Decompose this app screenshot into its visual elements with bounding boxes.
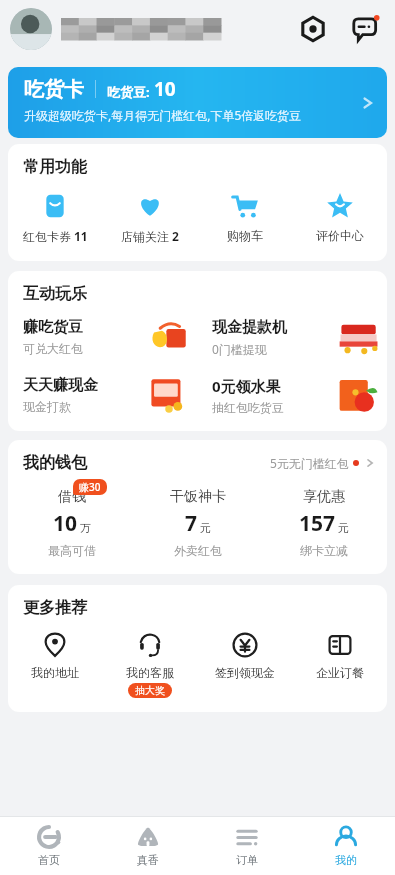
staticText: 首页 xyxy=(38,853,60,867)
staticText: 赚吃货豆 xyxy=(23,318,83,337)
button[interactable]: 订单 xyxy=(197,817,296,875)
staticText: 我的地址 xyxy=(31,665,79,680)
button[interactable]: 借钱 xyxy=(8,479,135,558)
button[interactable]: 首页 xyxy=(0,817,98,875)
button[interactable]: Profile avatar xyxy=(10,8,52,50)
staticText: 0门槛提现 xyxy=(212,341,267,357)
staticText: 可兑大红包 xyxy=(23,341,83,356)
staticText: 升级超级吃货卡,每月得无门槛红包,下单5倍返吃货豆 xyxy=(24,107,302,123)
button[interactable]: 真香 xyxy=(98,817,197,875)
button[interactable]: 店铺关注 xyxy=(102,190,197,246)
staticText: 我的钱包 xyxy=(23,453,87,473)
staticText: 抽大奖 xyxy=(135,684,165,697)
button[interactable]: 吃货卡 xyxy=(8,67,387,138)
staticText: 万 xyxy=(80,521,91,535)
staticText: 5元无门槛红包 xyxy=(270,455,349,471)
button[interactable]: 我的 xyxy=(296,817,395,875)
staticText: 真香 xyxy=(137,853,159,867)
button[interactable]: 企业订餐 xyxy=(292,632,387,680)
staticText: 外卖红包 xyxy=(174,543,222,558)
button[interactable]: 天天赚现金 xyxy=(8,373,197,417)
button[interactable]: 评价中心 xyxy=(292,190,387,245)
staticText: 元 xyxy=(200,521,211,535)
staticText: 干饭神卡 xyxy=(170,488,226,506)
staticText: 11 xyxy=(74,228,88,244)
staticText: 2 xyxy=(172,228,179,244)
button[interactable]: 我的地址 xyxy=(8,632,102,680)
staticText: 天天赚现金 xyxy=(23,376,98,395)
staticText: 享优惠 xyxy=(303,488,345,506)
button[interactable]: 干饭神卡 xyxy=(135,479,261,558)
staticText: 0元领水果 xyxy=(212,376,281,396)
staticText: 店铺关注 xyxy=(121,229,169,244)
staticText: 我的 xyxy=(335,853,357,867)
staticText: 绑卡立减 xyxy=(300,543,348,558)
staticText: 7 xyxy=(185,509,198,538)
button[interactable]: Settings xyxy=(293,9,333,49)
button[interactable]: 红包卡券 xyxy=(8,190,102,246)
button[interactable]: 签到领现金 xyxy=(197,632,292,680)
staticText: 现金提款机 xyxy=(212,318,287,337)
button[interactable]: 享优惠 xyxy=(261,479,387,558)
staticText: 订单 xyxy=(236,853,258,867)
staticText: 购物车 xyxy=(227,228,263,243)
staticText: 10 xyxy=(154,76,176,102)
staticText: 现金打款 xyxy=(23,399,71,414)
staticText: 签到领现金 xyxy=(215,665,275,680)
staticText: 借钱 xyxy=(58,488,86,506)
staticText: 抽红包吃货豆 xyxy=(212,400,284,415)
staticText: 10 xyxy=(53,509,78,538)
staticText: 评价中心 xyxy=(316,228,364,243)
button[interactable]: 我的客服 xyxy=(102,632,197,698)
staticText: 更多推荐 xyxy=(23,598,87,618)
staticText: 常用功能 xyxy=(23,157,87,177)
staticText: 元 xyxy=(338,521,349,535)
button[interactable]: Messages xyxy=(345,9,385,49)
staticText: 吃货卡 xyxy=(24,77,84,102)
staticText: 157 xyxy=(299,509,336,538)
staticText: 我的客服 xyxy=(126,665,174,680)
button[interactable]: 现金提款机 xyxy=(197,315,387,359)
button[interactable]: 5元无门槛红包 xyxy=(270,455,375,471)
staticText: 赚30 xyxy=(79,480,101,494)
button[interactable]: 购物车 xyxy=(197,190,292,245)
staticText: 吃货豆: xyxy=(107,83,150,101)
staticText: 最高可借 xyxy=(48,543,96,558)
staticText: 红包卡券 xyxy=(23,229,71,244)
button[interactable]: 0元领水果 xyxy=(197,373,387,417)
staticText: 企业订餐 xyxy=(316,665,364,680)
staticText: 互动玩乐 xyxy=(23,284,87,304)
button[interactable]: 赚吃货豆 xyxy=(8,315,197,359)
